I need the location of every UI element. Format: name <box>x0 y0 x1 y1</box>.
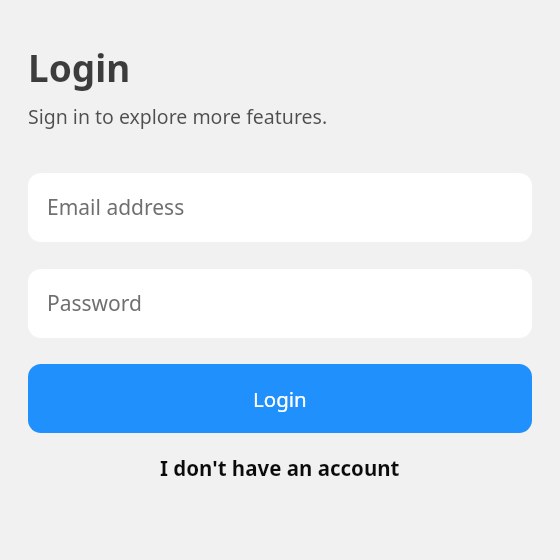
staticText: Sign in to explore more features. <box>28 103 328 130</box>
button[interactable]: I don't have an account <box>160 454 400 482</box>
staticText: Email address <box>47 193 185 222</box>
button[interactable]: Password <box>28 269 532 338</box>
button[interactable]: Login <box>28 364 532 433</box>
staticText: Login <box>253 385 307 413</box>
staticText: Password <box>47 289 142 318</box>
button[interactable]: Email address <box>28 173 532 242</box>
staticText: Login <box>28 42 131 92</box>
